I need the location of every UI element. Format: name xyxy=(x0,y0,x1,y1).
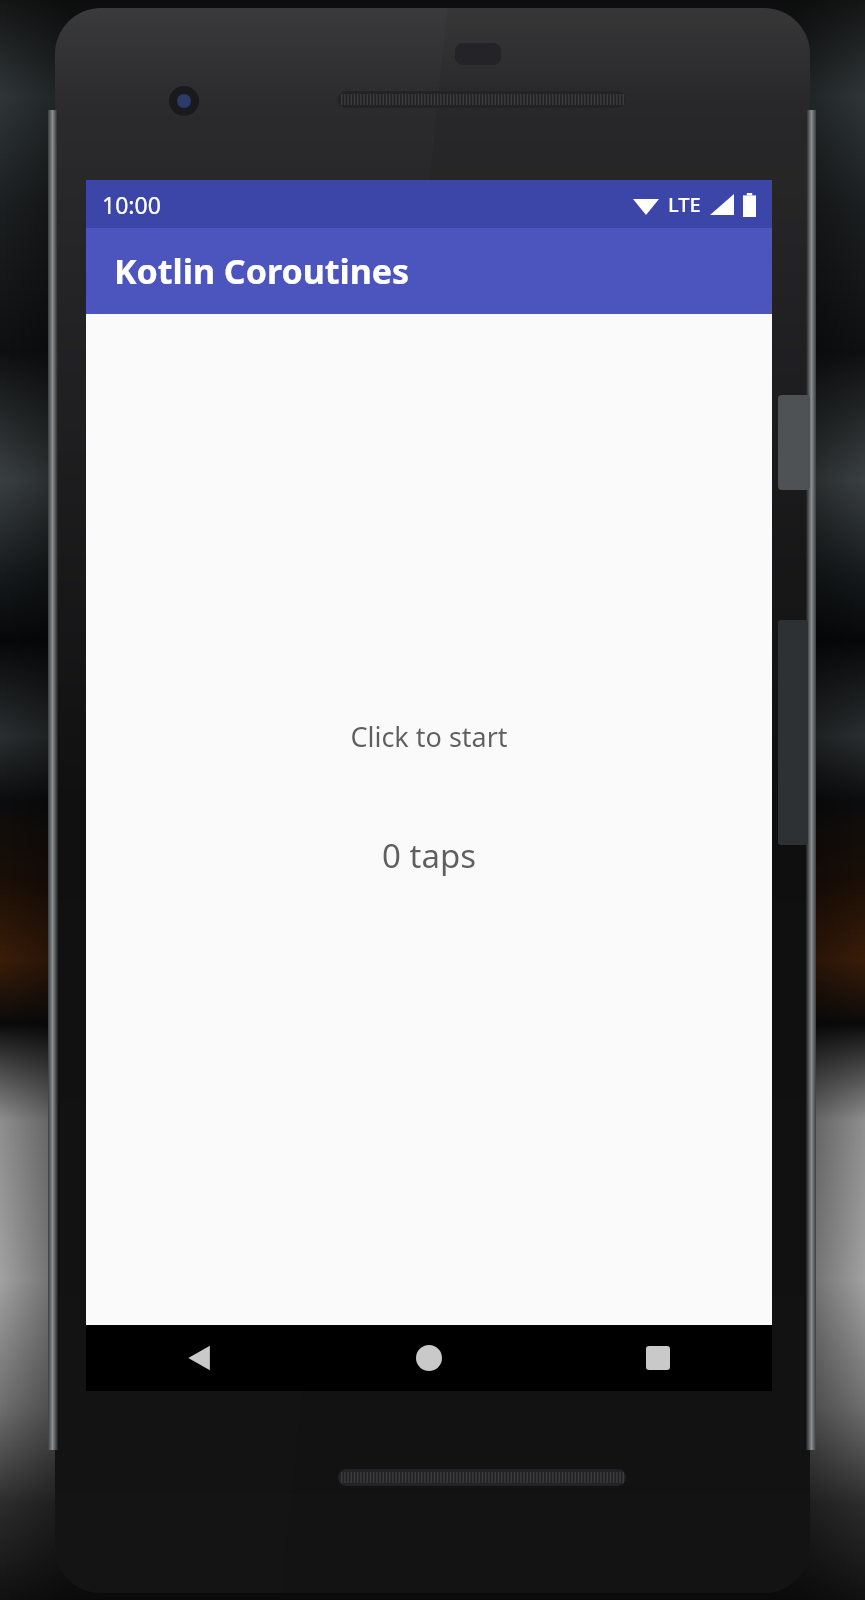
button[interactable]: Recent apps xyxy=(543,1325,772,1391)
button[interactable]: Home xyxy=(314,1325,543,1391)
staticText: Click to start xyxy=(350,718,508,755)
staticText: LTE xyxy=(668,191,701,218)
button[interactable]: Back xyxy=(86,1325,314,1391)
staticText: 10:00 xyxy=(102,189,161,220)
button[interactable]: Click to start xyxy=(86,718,772,878)
staticText: 0 taps xyxy=(382,833,476,878)
staticText: Kotlin Coroutines xyxy=(114,248,410,294)
